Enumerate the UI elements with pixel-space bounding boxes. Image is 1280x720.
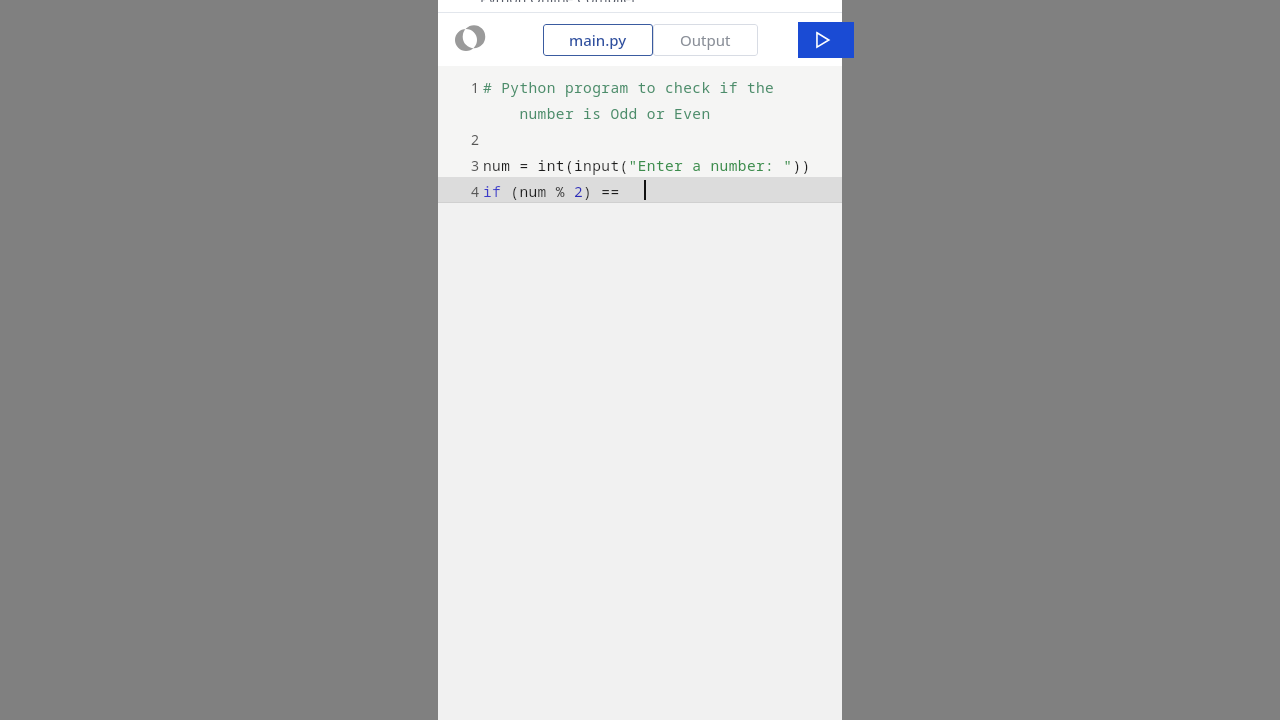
button[interactable]: Toggle dark mode <box>444 18 488 62</box>
staticText: Output <box>680 30 731 50</box>
button[interactable]: Run <box>798 22 854 58</box>
button[interactable]: main.py <box>543 24 653 56</box>
staticText: 3 <box>471 156 480 175</box>
button[interactable]: Output <box>653 24 758 56</box>
staticText: # Python program to check if the <box>483 77 775 97</box>
staticText: 4 <box>471 182 480 201</box>
staticText: main.py <box>569 30 627 50</box>
staticText: number is Odd or Even <box>483 103 711 123</box>
staticText: num = int(input("Enter a number: ")) <box>483 155 811 175</box>
staticText: Python Online Compiler <box>480 0 637 2</box>
staticText: 2 <box>471 130 480 149</box>
staticText: 1 <box>471 78 480 97</box>
staticText: if (num % 2) == <box>483 181 629 201</box>
